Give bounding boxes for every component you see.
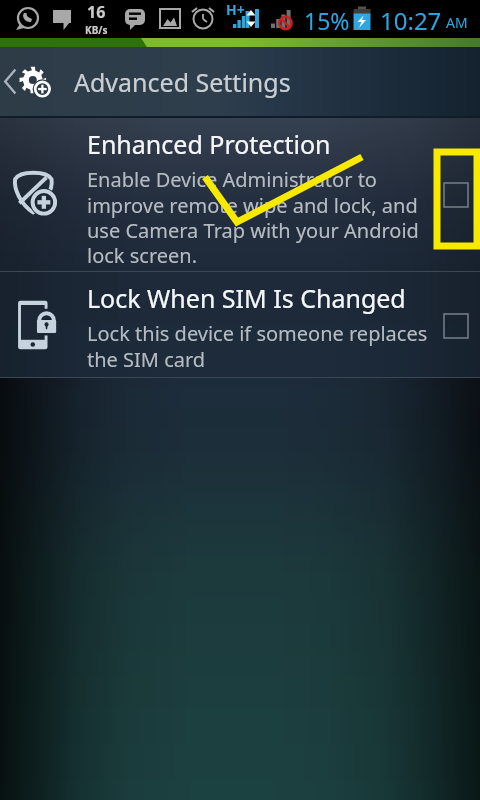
staticText: Lock this device if someone replaces the… <box>87 320 437 372</box>
staticText: 16 <box>87 1 106 23</box>
button[interactable]: Back <box>0 47 480 116</box>
staticText: Advanced Settings <box>74 65 291 99</box>
staticText: H+ <box>226 0 245 19</box>
staticText: 10:27 <box>380 4 442 37</box>
button[interactable]: Lock When SIM Is Changed <box>0 272 480 377</box>
staticText: Enhanced Protection <box>87 127 331 161</box>
staticText: 15% <box>304 5 350 36</box>
staticText: AM <box>446 13 468 32</box>
button[interactable]: Enhanced Protection <box>0 118 480 271</box>
staticText: KB/s <box>85 23 108 37</box>
staticText: Enable Device Administrator to improve r… <box>87 166 437 268</box>
staticText: Lock When SIM Is Changed <box>87 281 406 315</box>
other: Back <box>4 68 16 95</box>
